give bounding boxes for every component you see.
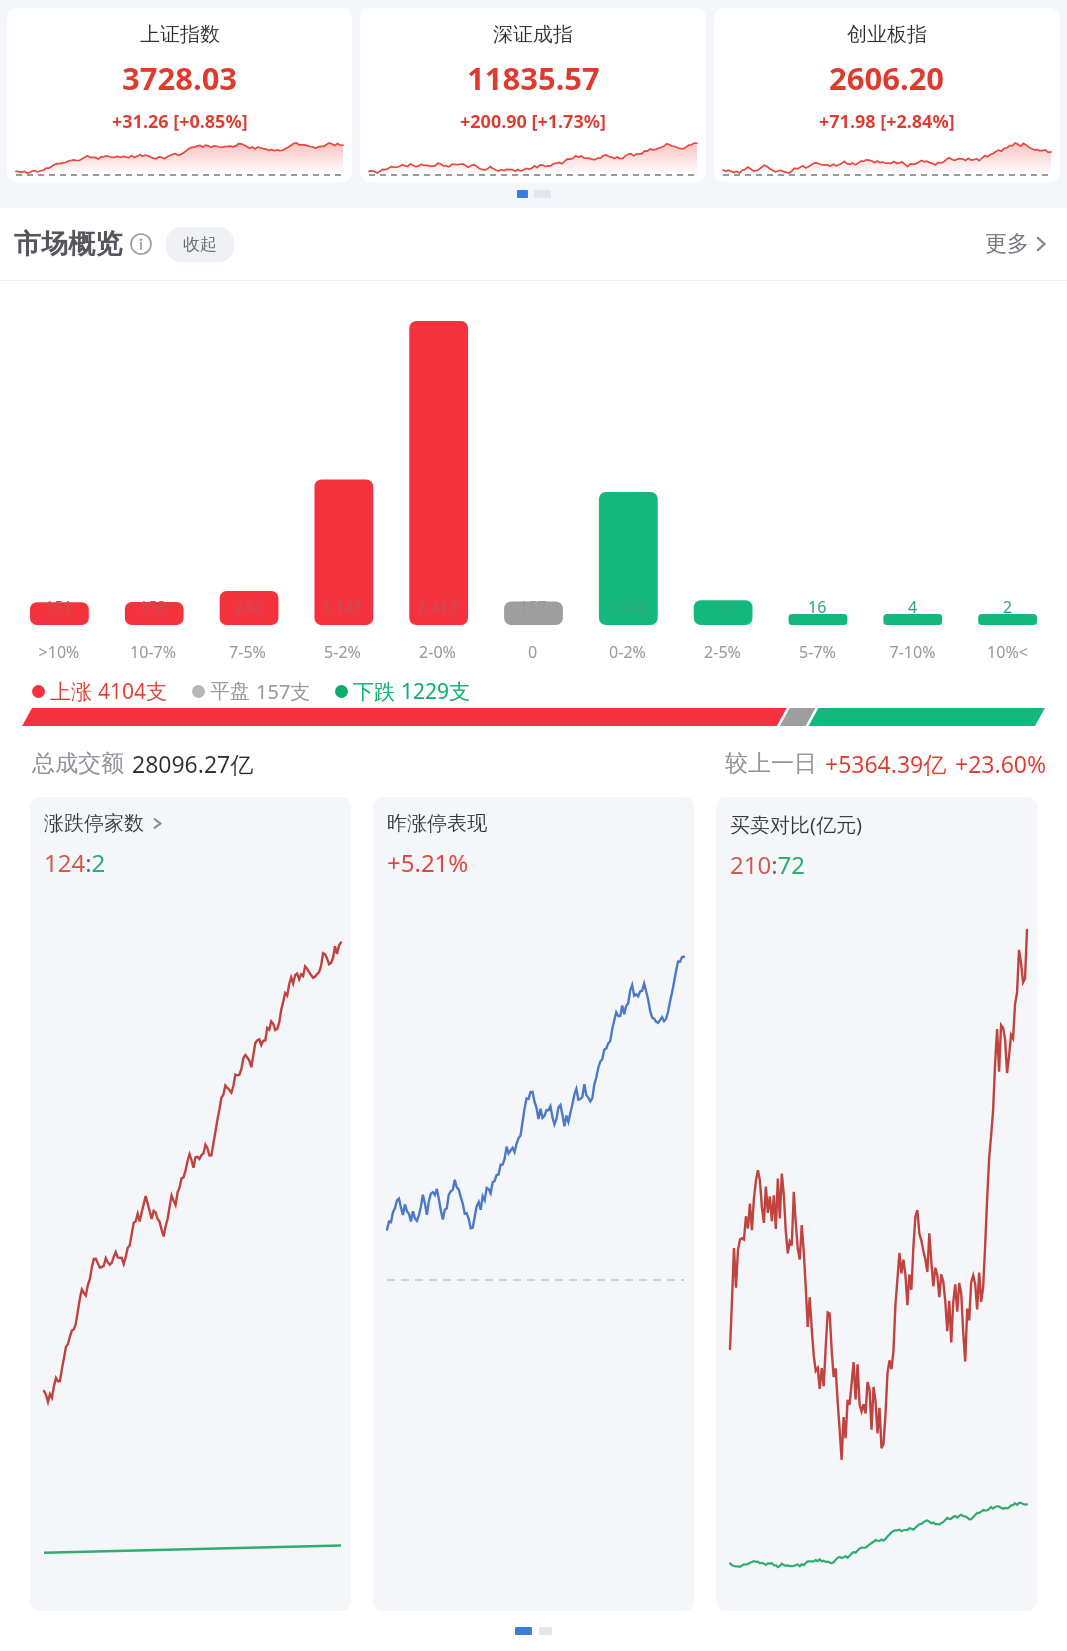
button[interactable]: 涨跌停家数 — [30, 797, 351, 1611]
staticText: 0 — [485, 641, 580, 663]
staticText: 167 — [709, 596, 737, 618]
staticText: 4 — [908, 596, 918, 618]
staticText: 2606.20 — [829, 57, 945, 99]
staticText: 16 — [808, 596, 827, 618]
staticText: +31.26 [+0.85%] — [112, 109, 248, 134]
staticText: 28096.27亿 — [132, 748, 254, 779]
staticText: 市场概览 — [14, 227, 122, 261]
staticText: 3728.03 — [122, 57, 238, 99]
staticText: +71.98 [+2.84%] — [819, 109, 955, 134]
staticText: 0-2% — [580, 641, 675, 663]
staticText: 5-2% — [295, 641, 390, 663]
staticText: 较上一日 — [725, 749, 817, 778]
staticText: 10%< — [960, 641, 1055, 663]
button[interactable]: 创业板指 — [714, 8, 1060, 182]
staticText: 11835.57 — [467, 57, 600, 99]
staticText: 涨跌停家数 — [44, 811, 144, 836]
staticText: +200.90 [+1.73%] — [460, 109, 606, 134]
staticText: +23.60% — [955, 748, 1047, 779]
staticText: 7-5% — [200, 641, 295, 663]
staticText: 2,417 — [417, 596, 458, 618]
staticText: 更多 — [985, 230, 1029, 258]
staticText: 1229支 — [401, 677, 471, 706]
staticText: 1,040 — [607, 596, 648, 618]
staticText: 总成交额 — [32, 749, 124, 778]
staticText: >10% — [12, 641, 106, 663]
button[interactable]: 买卖对比(亿元) — [716, 797, 1037, 1611]
staticText: 上涨 — [50, 679, 92, 705]
staticText: 深证成指 — [493, 22, 573, 47]
staticText: 124:2 — [44, 846, 106, 879]
staticText: 157支 — [256, 678, 311, 705]
staticText: +5364.39亿 — [825, 748, 947, 779]
staticText: 10-7% — [106, 641, 200, 663]
staticText: 157 — [519, 596, 547, 618]
staticText: 1,141 — [322, 596, 363, 618]
staticText: +5.21% — [387, 846, 469, 879]
button[interactable]: 上证指数 — [7, 8, 352, 182]
button[interactable]: 深证成指 — [360, 8, 706, 182]
staticText: 下跌 — [353, 679, 395, 705]
button[interactable]: 更多 — [981, 226, 1053, 262]
staticText: 153 — [139, 596, 167, 618]
button[interactable]: Info — [130, 233, 152, 255]
staticText: 平盘 — [210, 679, 250, 704]
staticText: 收起 — [183, 234, 217, 255]
button[interactable]: 收起 — [166, 227, 234, 262]
staticText: 4104支 — [98, 677, 168, 706]
staticText: 2 — [1003, 596, 1013, 618]
staticText: 210:72 — [730, 848, 806, 881]
staticText: 151 — [45, 596, 73, 618]
staticText: 买卖对比(亿元) — [730, 811, 862, 838]
staticText: 昨涨停表现 — [387, 811, 487, 836]
staticText: 242 — [234, 596, 262, 618]
staticText: 5-7% — [770, 641, 865, 663]
button[interactable]: 昨涨停表现 — [373, 797, 694, 1611]
staticText: 2-5% — [675, 641, 770, 663]
staticText: 7-10% — [865, 641, 960, 663]
staticText: 创业板指 — [847, 22, 927, 47]
staticText: 2-0% — [390, 641, 485, 663]
staticText: 上证指数 — [140, 22, 220, 47]
